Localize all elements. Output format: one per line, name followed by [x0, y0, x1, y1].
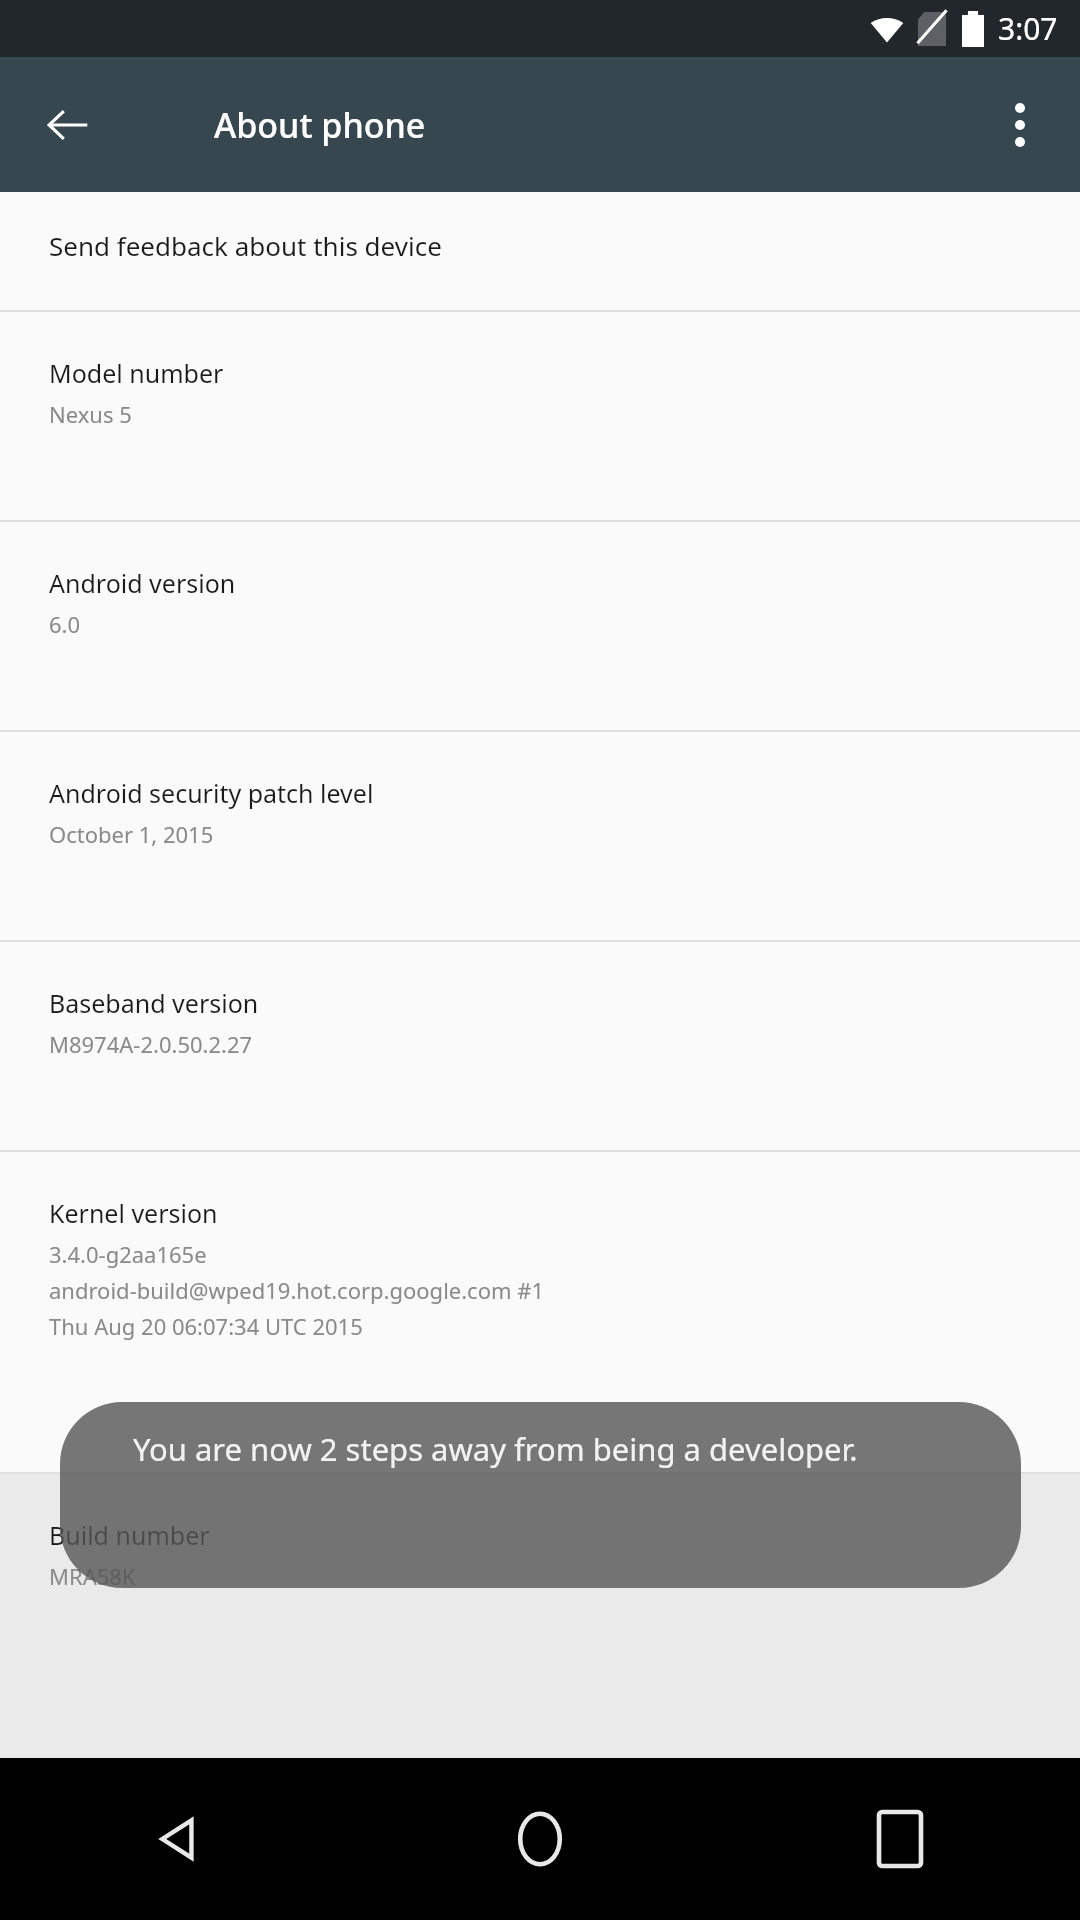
staticText: Send feedback about this device — [49, 228, 442, 263]
button[interactable]: Model number — [0, 312, 1080, 520]
button[interactable]: Build number — [0, 1474, 1080, 1677]
staticText: Android version — [49, 566, 236, 600]
staticText: You are now 2 steps away from being a de… — [133, 1428, 858, 1470]
button[interactable]: Baseband version — [0, 942, 1080, 1150]
staticText: 6.0 — [49, 609, 81, 639]
staticText: Baseband version — [49, 986, 259, 1020]
staticText: Model number — [49, 356, 224, 390]
button[interactable]: Back — [26, 83, 110, 167]
staticText: Android security patch level — [49, 776, 374, 810]
staticText: 3:07 — [998, 8, 1058, 49]
staticText: About phone — [214, 102, 426, 148]
staticText: android-build@wped19.hot.corp.google.com… — [49, 1275, 545, 1305]
button[interactable]: Send feedback about this device — [0, 192, 1080, 310]
button[interactable]: Recent apps — [840, 1779, 960, 1899]
staticText: Thu Aug 20 06:07:34 UTC 2015 — [49, 1311, 363, 1341]
button[interactable]: More options — [978, 83, 1062, 167]
button[interactable]: Android security patch level — [0, 732, 1080, 940]
staticText: Build number — [49, 1518, 210, 1552]
button[interactable]: Back — [120, 1779, 240, 1899]
staticText: Kernel version — [49, 1196, 218, 1230]
button[interactable]: Home — [480, 1779, 600, 1899]
staticText: M8974A-2.0.50.2.27 — [49, 1029, 253, 1059]
staticText: 3.4.0-g2aa165e — [49, 1239, 207, 1269]
button[interactable]: Android version — [0, 522, 1080, 730]
staticText: MRA58K — [49, 1561, 136, 1591]
staticText: October 1, 2015 — [49, 819, 214, 849]
button[interactable]: Kernel version — [0, 1152, 1080, 1472]
staticText: Nexus 5 — [49, 399, 132, 429]
